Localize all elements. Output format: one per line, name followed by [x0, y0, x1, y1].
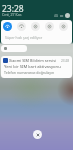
button[interactable]: Quick setting 2: [31, 22, 40, 31]
button[interactable]: Quick setting 0: [3, 22, 12, 31]
staticText: Yeni bir SIM kart aktivasyonu: [4, 64, 61, 70]
staticText: Cmt, 27 Kas: [2, 12, 22, 17]
button[interactable]: Settings: [65, 13, 70, 18]
staticText: 23:28: [2, 3, 24, 15]
button[interactable]: Clear all notifications: [33, 130, 42, 139]
staticText: Telefon numaranızı doğrulayın: [4, 70, 55, 75]
staticText: 4G: [54, 14, 59, 18]
button[interactable]: Notification group: [1, 45, 27, 52]
button[interactable]: Quick setting 3: [45, 22, 54, 31]
staticText: Süper hızlı şarj ediliyor: [5, 35, 43, 40]
staticText: Xiaomi SIM Bildirim servisi: [9, 58, 57, 63]
staticText: 23:28: [61, 59, 70, 63]
button[interactable]: Xiaomi SIM Bildirim servisi: [1, 56, 72, 78]
button[interactable]: Quick setting 1: [17, 22, 26, 31]
button[interactable]: Quick setting 4: [59, 22, 68, 31]
